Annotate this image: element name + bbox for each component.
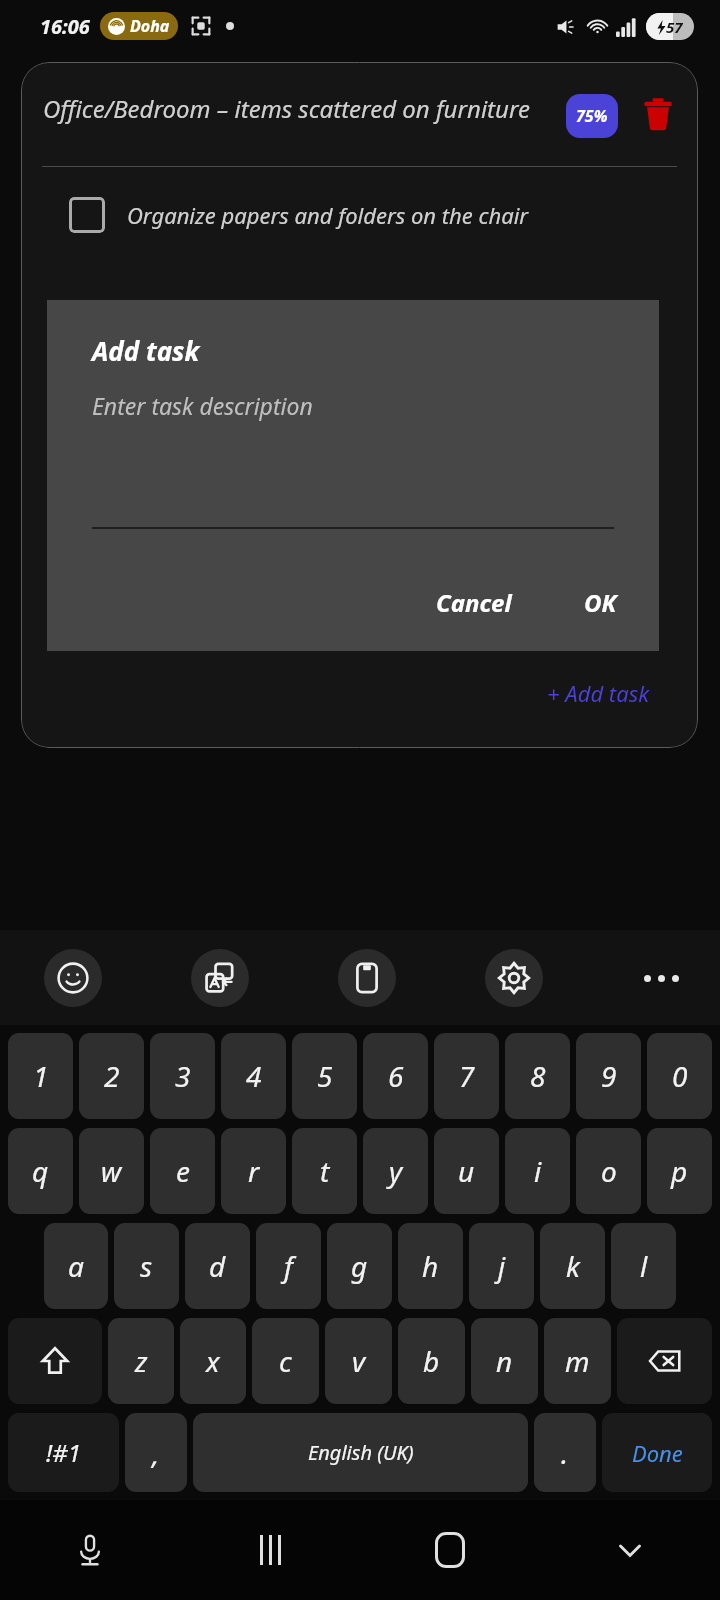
staticText: , (152, 1434, 160, 1472)
button[interactable]: . (534, 1413, 596, 1492)
staticText: i (534, 1152, 542, 1190)
button[interactable]: English (UK) (193, 1413, 528, 1492)
staticText: Done (632, 1438, 683, 1468)
staticText: q (32, 1152, 49, 1190)
staticText: 5 (317, 1057, 333, 1095)
button[interactable]: e (150, 1128, 215, 1214)
button[interactable]: Settings (485, 949, 543, 1007)
button[interactable]: y (363, 1128, 428, 1214)
staticText: z (135, 1342, 148, 1380)
button[interactable]: Organize papers and folders on the chair (69, 197, 678, 233)
button[interactable]: 9 (576, 1033, 641, 1119)
button[interactable]: g (327, 1223, 392, 1309)
button[interactable]: 75% (566, 94, 618, 138)
staticText: !#1 (46, 1436, 81, 1469)
button[interactable]: Shift (8, 1318, 102, 1404)
staticText: d (209, 1247, 226, 1285)
button[interactable]: OK (572, 580, 629, 625)
button[interactable]: 8 (505, 1033, 570, 1119)
staticText: o (601, 1152, 617, 1190)
staticText: 1 (33, 1057, 49, 1095)
staticText: r (248, 1152, 260, 1190)
button[interactable]: Translate (191, 949, 249, 1007)
button[interactable]: o (576, 1128, 641, 1214)
button[interactable]: m (544, 1318, 611, 1404)
staticText: t (320, 1152, 330, 1190)
staticText: English (UK) (308, 1439, 414, 1466)
button[interactable]: Done (602, 1413, 712, 1492)
staticText: Enter task description (92, 390, 313, 421)
button[interactable]: Hide keyboard (540, 1500, 720, 1600)
button[interactable]: f (256, 1223, 321, 1309)
staticText: . (561, 1434, 569, 1472)
button[interactable]: 1 (8, 1033, 73, 1119)
staticText: 7 (459, 1057, 475, 1095)
staticText: 8 (530, 1057, 546, 1095)
staticText: 0 (672, 1057, 688, 1095)
button[interactable]: 3 (150, 1033, 215, 1119)
button[interactable]: k (540, 1223, 605, 1309)
staticText: h (422, 1247, 439, 1285)
button[interactable]: 7 (434, 1033, 499, 1119)
button[interactable]: w (79, 1128, 144, 1214)
button[interactable]: Recent apps (180, 1500, 360, 1600)
staticText: a (68, 1247, 84, 1285)
button[interactable]: Backspace (617, 1318, 712, 1404)
staticText: Doha (130, 15, 170, 37)
button[interactable]: + Add task (547, 678, 650, 708)
staticText: Office/Bedroom – items scattered on furn… (43, 92, 558, 125)
button[interactable]: q (8, 1128, 73, 1214)
button[interactable]: 2 (79, 1033, 144, 1119)
staticText: s (140, 1247, 153, 1285)
button[interactable]: !#1 (8, 1413, 119, 1492)
staticText: x (206, 1342, 220, 1380)
staticText: b (423, 1342, 440, 1380)
button[interactable]: n (471, 1318, 538, 1404)
button[interactable]: , (125, 1413, 187, 1492)
button[interactable]: v (325, 1318, 392, 1404)
button[interactable]: x (180, 1318, 246, 1404)
button[interactable]: u (434, 1128, 499, 1214)
button[interactable]: 5 (292, 1033, 357, 1119)
button[interactable]: s (114, 1223, 179, 1309)
button[interactable]: Clipboard (338, 949, 396, 1007)
button[interactable]: 0 (647, 1033, 712, 1119)
button[interactable]: j (469, 1223, 534, 1309)
staticText: y (389, 1152, 403, 1190)
button[interactable]: h (398, 1223, 463, 1309)
button[interactable]: Emoji (44, 949, 102, 1007)
button[interactable]: Cancel (424, 580, 524, 625)
staticText: u (458, 1152, 475, 1190)
button[interactable]: b (398, 1318, 465, 1404)
button[interactable]: Voice input (0, 1500, 180, 1600)
button[interactable]: More options (632, 949, 690, 1007)
staticText: 4 (246, 1057, 262, 1095)
button[interactable]: 4 (221, 1033, 286, 1119)
button[interactable]: p (647, 1128, 712, 1214)
staticText: + Add task (547, 678, 650, 708)
button[interactable]: r (221, 1128, 286, 1214)
staticText: Add task (92, 333, 200, 368)
button[interactable]: 6 (363, 1033, 428, 1119)
button[interactable]: d (185, 1223, 250, 1309)
staticText: n (496, 1342, 513, 1380)
button[interactable]: t (292, 1128, 357, 1214)
staticText: 2 (104, 1057, 120, 1095)
button[interactable]: a (44, 1223, 108, 1309)
staticText: g (351, 1247, 368, 1285)
staticText: e (176, 1152, 190, 1190)
staticText: m (565, 1342, 590, 1380)
button[interactable]: c (252, 1318, 319, 1404)
staticText: f (284, 1247, 293, 1285)
staticText: 75% (576, 105, 608, 127)
staticText: p (671, 1152, 688, 1190)
button[interactable]: z (108, 1318, 174, 1404)
staticText: j (498, 1247, 506, 1285)
staticText: k (566, 1247, 580, 1285)
button[interactable]: l (611, 1223, 676, 1309)
staticText: 6 (388, 1057, 404, 1095)
button[interactable]: Home (360, 1500, 540, 1600)
button[interactable]: i (505, 1128, 570, 1214)
staticText: w (101, 1152, 122, 1190)
button[interactable]: Delete (636, 92, 680, 136)
